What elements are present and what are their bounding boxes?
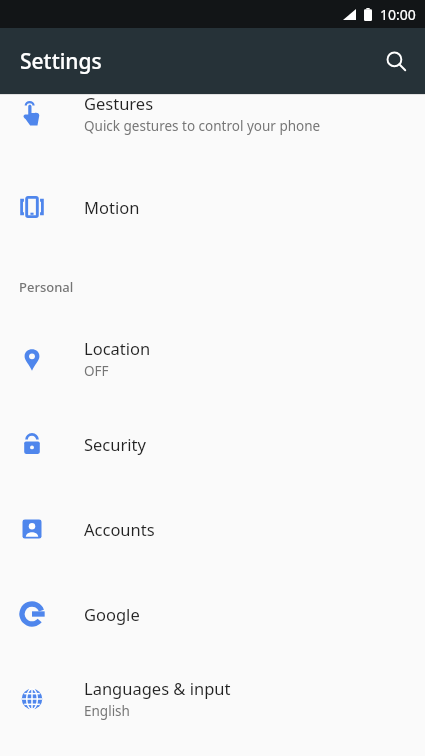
staticText: Accounts	[84, 518, 155, 540]
staticText: OFF	[84, 362, 109, 380]
button[interactable]: Motion	[0, 164, 425, 249]
button[interactable]: Security	[0, 401, 425, 486]
staticText: Location	[84, 337, 151, 359]
staticText: Security	[84, 433, 146, 455]
staticText: Personal	[19, 278, 74, 296]
staticText: Gestures	[84, 95, 154, 114]
staticText: Google	[84, 603, 140, 625]
button[interactable]: Languages & input	[0, 656, 425, 741]
button[interactable]: Google	[0, 571, 425, 656]
staticText: Motion	[84, 196, 140, 218]
button[interactable]: Gestures	[0, 95, 425, 148]
staticText: English	[84, 702, 130, 720]
button[interactable]: Location	[0, 316, 425, 401]
staticText: 10:00	[380, 5, 416, 24]
button[interactable]: Search	[372, 37, 420, 85]
staticText: Quick gestures to control your phone	[84, 117, 321, 135]
staticText: Settings	[20, 47, 102, 76]
button[interactable]: Accounts	[0, 486, 425, 571]
staticText: Languages & input	[84, 677, 231, 699]
